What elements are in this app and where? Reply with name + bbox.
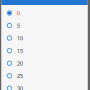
staticText: 5: [17, 21, 20, 29]
staticText: 15: [17, 47, 23, 55]
button[interactable]: 0: [1, 7, 88, 19]
button[interactable]: 15: [1, 44, 88, 57]
button[interactable]: 5: [1, 19, 88, 32]
staticText: 10: [17, 34, 23, 42]
button[interactable]: 30: [1, 82, 88, 90]
button[interactable]: 20: [1, 57, 88, 69]
button[interactable]: 25: [1, 69, 88, 82]
staticText: 30: [17, 84, 23, 90]
button[interactable]: 10: [1, 32, 88, 44]
staticText: 25: [17, 72, 23, 80]
staticText: 20: [17, 59, 23, 67]
staticText: 0: [17, 9, 20, 17]
